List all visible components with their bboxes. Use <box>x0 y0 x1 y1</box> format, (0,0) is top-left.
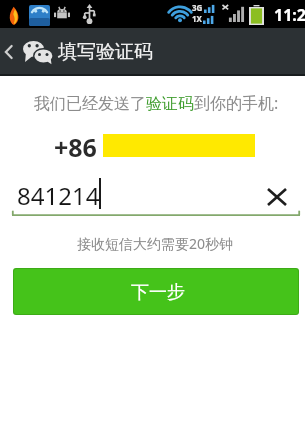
button[interactable]: 下一步 <box>14 269 298 314</box>
staticText: 我们已经发送了验证码到你的手机: <box>34 92 279 114</box>
staticText: 841214 <box>17 179 100 212</box>
button[interactable]: Clear <box>262 182 292 212</box>
staticText: 接收短信大约需要20秒钟 <box>77 234 234 253</box>
staticText: 11:25 <box>274 4 305 26</box>
staticText: 下一步 <box>131 281 185 304</box>
button[interactable]: Back <box>0 28 20 76</box>
staticText: 填写验证码 <box>58 40 153 64</box>
staticText: +86 <box>54 130 97 164</box>
staticText: 1X <box>192 13 202 24</box>
staticText: 3G <box>192 2 203 13</box>
